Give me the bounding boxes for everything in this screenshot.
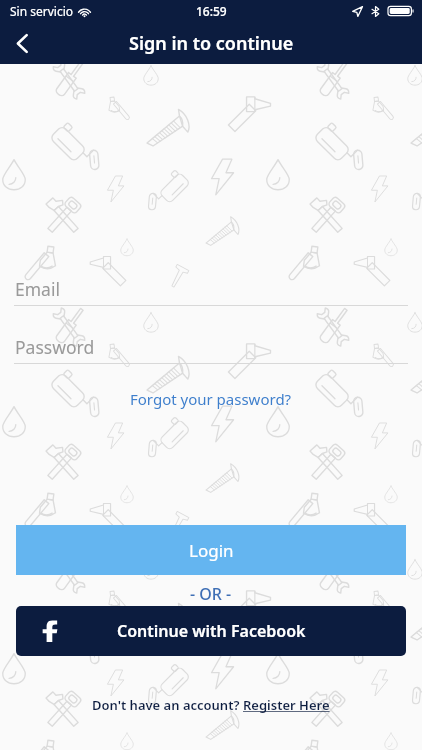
- staticText: Sign in to continue: [129, 31, 294, 56]
- staticText: Continue with Facebook: [117, 620, 306, 642]
- staticText: Password: [15, 335, 95, 359]
- button[interactable]: Back: [0, 22, 44, 64]
- button[interactable]: Continue with Facebook: [16, 606, 406, 656]
- staticText: - OR -: [190, 583, 232, 605]
- staticText: Email: [15, 277, 60, 301]
- staticText: Sin servicio: [10, 3, 74, 19]
- button[interactable]: Forgot your password?: [130, 389, 292, 409]
- staticText: Login: [189, 539, 234, 562]
- button[interactable]: Register Here: [243, 696, 330, 714]
- staticText: 16:59: [196, 3, 227, 19]
- staticText: Don't have an account?: [92, 696, 243, 714]
- button[interactable]: Login: [16, 525, 406, 575]
